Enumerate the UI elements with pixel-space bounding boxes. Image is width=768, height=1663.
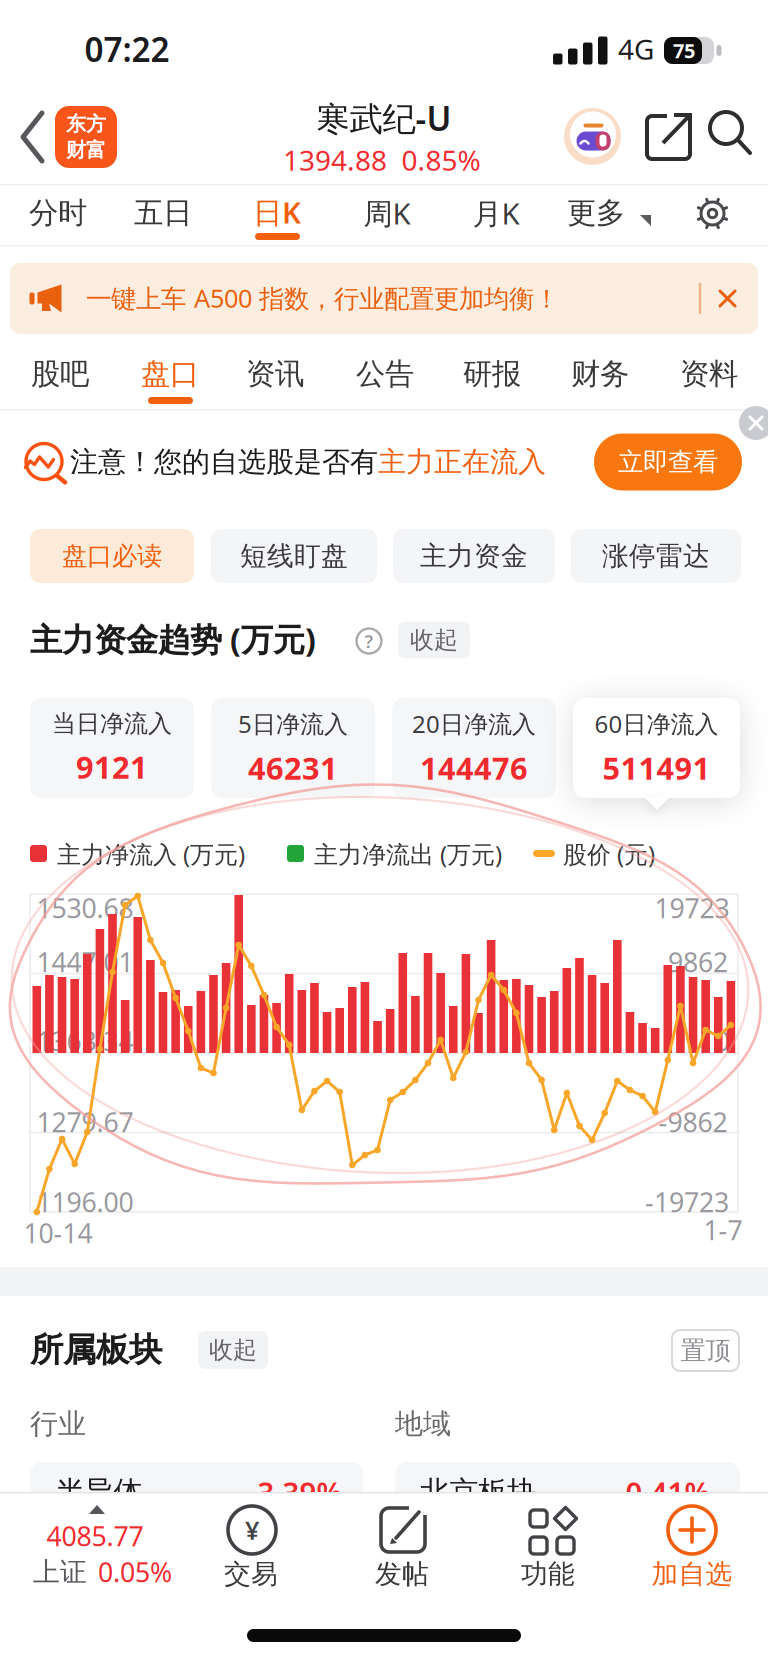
staticText: 周K xyxy=(363,193,410,232)
staticText: 0.05% xyxy=(98,1554,172,1590)
button[interactable]: Dismiss banner xyxy=(718,289,737,308)
staticText: 寒武纪-U xyxy=(316,96,451,140)
staticText: 所属板块 xyxy=(30,1329,162,1370)
staticText: 144476 xyxy=(420,748,528,788)
button[interactable]: 主力资金 xyxy=(393,529,555,583)
staticText: 10-14 xyxy=(23,1215,92,1251)
staticText: 资料 xyxy=(680,356,738,392)
staticText: 月K xyxy=(472,193,519,232)
staticText: 行业 xyxy=(30,1407,86,1441)
button[interactable]: 置顶 xyxy=(671,1329,740,1372)
staticText: 加自选 xyxy=(651,1558,732,1590)
button[interactable]: 月K xyxy=(472,193,519,232)
staticText: 发帖 xyxy=(375,1558,429,1590)
staticText: 4085.77 xyxy=(46,1518,143,1554)
staticText: 1-7 xyxy=(703,1212,742,1248)
button[interactable]: Help xyxy=(355,627,383,655)
staticText: 地域 xyxy=(395,1407,451,1441)
button[interactable]: 60日净流入 xyxy=(573,698,740,798)
button[interactable]: 交易 xyxy=(191,1496,311,1592)
staticText: 主力资金趋势 (万元) xyxy=(30,618,316,660)
staticText: 东方 xyxy=(66,112,106,136)
staticText: 功能 xyxy=(521,1558,575,1590)
button[interactable]: 立即查看 xyxy=(594,433,742,490)
staticText: 分时 xyxy=(29,195,87,231)
staticText: ? xyxy=(364,629,373,653)
button[interactable]: Close notice xyxy=(739,406,768,440)
staticText: 511491 xyxy=(602,748,710,788)
staticText: 07:22 xyxy=(84,27,169,71)
staticText: 研报 xyxy=(463,356,521,392)
staticText: 公告 xyxy=(356,356,414,392)
staticText: 置顶 xyxy=(680,1335,730,1366)
staticText: 资讯 xyxy=(246,356,304,392)
button[interactable]: 当日净流入 xyxy=(30,698,194,798)
staticText: 股吧 xyxy=(31,356,89,392)
button[interactable]: 北京板块 xyxy=(395,1462,740,1524)
button[interactable]: 公告 xyxy=(356,356,414,392)
staticText: 股价 (元) xyxy=(563,838,655,870)
button[interactable]: 短线盯盘 xyxy=(211,529,377,583)
staticText: 75 xyxy=(673,37,695,64)
button[interactable]: 东方财富 xyxy=(55,106,117,168)
button[interactable]: 资料 xyxy=(680,356,738,392)
staticText: 上证 xyxy=(33,1556,87,1588)
button[interactable]: 5日净流入 xyxy=(211,698,375,798)
button[interactable]: 五日 xyxy=(134,195,192,231)
button[interactable]: Settings xyxy=(693,194,731,232)
button[interactable]: 功能 xyxy=(488,1496,608,1592)
staticText: 4G xyxy=(618,30,654,68)
staticText: -9862 xyxy=(658,1104,727,1140)
staticText: 盘口 xyxy=(141,356,199,392)
staticText: 3.39% xyxy=(257,1472,342,1511)
staticText: 日K xyxy=(253,192,301,231)
staticText: 一键上车 A500 指数，行业配置更加均衡！ xyxy=(86,281,559,315)
staticText: 9862 xyxy=(668,944,728,980)
button[interactable]: 研报 xyxy=(463,356,521,392)
button[interactable]: 更多 xyxy=(567,195,625,231)
staticText: 主力正在流入 xyxy=(378,445,546,479)
button[interactable]: 资讯 xyxy=(246,356,304,392)
button[interactable]: 收起 xyxy=(198,1331,268,1369)
button[interactable]: 20日净流入 xyxy=(392,698,556,798)
button[interactable]: Assistant xyxy=(563,107,621,165)
button[interactable]: 周K xyxy=(363,193,410,232)
button[interactable]: Search xyxy=(708,111,754,157)
button[interactable]: 收起 xyxy=(398,621,470,658)
staticText: 1363.34 xyxy=(36,1023,133,1059)
staticText: ¥ xyxy=(245,1513,259,1547)
staticText: 5日净流入 xyxy=(238,708,348,740)
button[interactable]: 发帖 xyxy=(342,1496,462,1592)
staticText: 更多 xyxy=(567,195,625,231)
button[interactable]: 股吧 xyxy=(31,356,89,392)
staticText: 财富 xyxy=(66,138,106,162)
button[interactable]: 半导体 xyxy=(30,1462,363,1524)
staticText: 立即查看 xyxy=(618,446,718,477)
staticText: 9121 xyxy=(76,746,148,787)
button[interactable]: 上证指数 xyxy=(17,1496,177,1592)
button[interactable]: 财务 xyxy=(571,356,629,392)
staticText: 主力净流入 (万元) xyxy=(57,838,245,870)
staticText: 涨停雷达 xyxy=(602,540,710,572)
staticText: 主力资金 xyxy=(420,540,528,572)
button[interactable]: 一键上车 A500 指数 xyxy=(10,263,758,334)
staticText: 交易 xyxy=(224,1558,278,1590)
staticText: 主力净流出 (万元) xyxy=(314,838,502,870)
button[interactable]: 盘口 xyxy=(141,356,199,392)
button[interactable]: Back xyxy=(20,111,46,163)
staticText: 收起 xyxy=(410,625,458,655)
button[interactable]: 加自选 xyxy=(627,1496,757,1592)
button[interactable]: 盘口必读 xyxy=(30,529,194,583)
button[interactable]: 涨停雷达 xyxy=(571,529,741,583)
staticText: 20日净流入 xyxy=(412,708,536,740)
staticText: 财务 xyxy=(571,356,629,392)
staticText: 收起 xyxy=(209,1335,257,1365)
button[interactable]: 日K xyxy=(253,192,301,231)
staticText: 当日净流入 xyxy=(52,709,172,738)
staticText: 注意！您的自选股是否有 xyxy=(70,445,378,479)
staticText: 1279.67 xyxy=(36,1104,133,1140)
staticText: 0.41% xyxy=(625,1472,710,1511)
button[interactable]: Share xyxy=(645,109,695,161)
staticText: 19723 xyxy=(654,890,729,926)
button[interactable]: 分时 xyxy=(29,195,87,231)
